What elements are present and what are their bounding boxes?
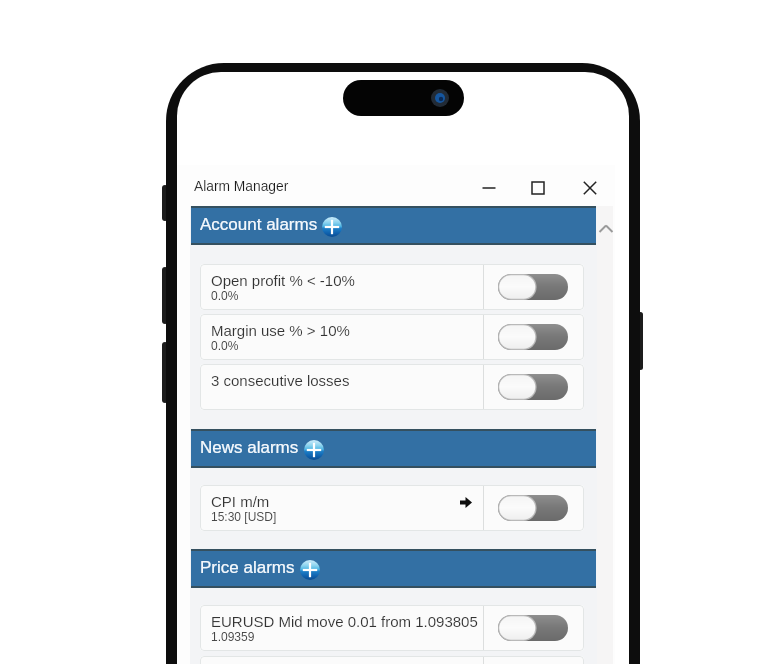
button[interactable]: Scroll up (597, 220, 615, 238)
staticText: News alarms (200, 438, 299, 457)
staticText: 3 consecutive losses (211, 372, 350, 389)
button[interactable]: EURUSD Mid move 0.01 from 1.093805 (200, 605, 584, 651)
staticText: Price alarms (200, 558, 295, 577)
button[interactable]: Add alarm (322, 217, 342, 237)
button[interactable]: Add alarm (300, 560, 320, 580)
staticText: 0.0% (211, 339, 239, 352)
button[interactable]: Toggle alarm (498, 274, 568, 300)
button[interactable]: 3 consecutive losses (200, 364, 584, 410)
staticText: 0.0% (211, 289, 239, 302)
button[interactable]: Minimize (467, 165, 511, 207)
staticText: Account alarms (200, 215, 318, 234)
button[interactable]: Add alarm (304, 440, 324, 460)
button[interactable]: Maximize (516, 165, 560, 207)
staticText: Open profit % < -10% (211, 272, 355, 289)
button[interactable]: Close (568, 165, 612, 207)
button[interactable]: Toggle alarm (498, 615, 568, 641)
staticText: 1.09359 (211, 630, 255, 643)
button[interactable]: Toggle alarm (498, 374, 568, 400)
button[interactable]: CPI m/m (200, 485, 584, 531)
staticText: 15:30 [USD] (211, 510, 277, 523)
button[interactable]: Toggle alarm (498, 495, 568, 521)
button[interactable]: Open profit % < -10% (200, 264, 584, 310)
staticText: Alarm Manager (194, 179, 289, 194)
button[interactable]: GBPUSD Mid move 0.01 from 1.26410 (200, 656, 584, 664)
staticText: EURUSD Mid move 0.01 from 1.093805 (211, 613, 478, 630)
button[interactable]: Account alarms (191, 206, 596, 245)
button[interactable]: Price alarms (191, 549, 596, 588)
staticText: CPI m/m (211, 493, 270, 510)
staticText: Margin use % > 10% (211, 322, 350, 339)
button[interactable]: News alarms (191, 429, 596, 468)
button[interactable]: Margin use % > 10% (200, 314, 584, 360)
button[interactable]: Toggle alarm (498, 324, 568, 350)
